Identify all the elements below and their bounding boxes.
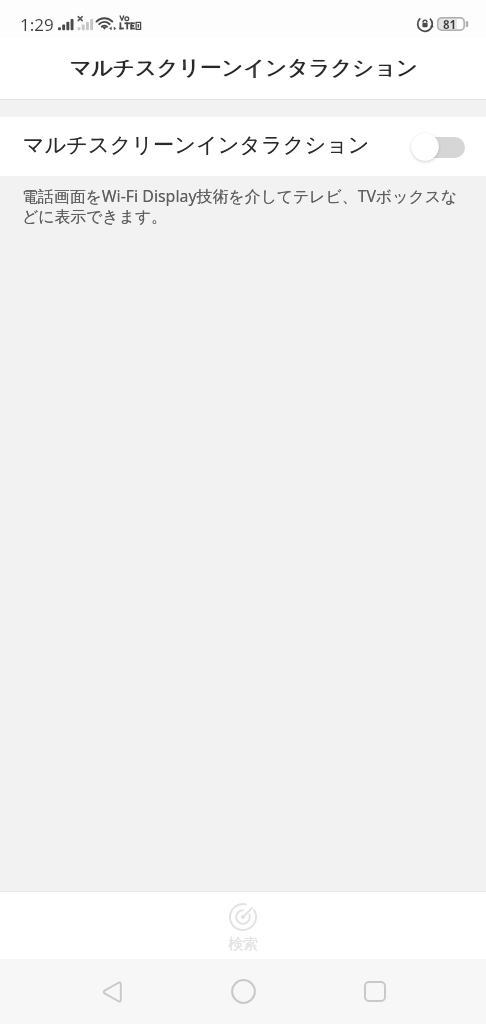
staticText: マルチスクリーンインタラクション [69, 54, 418, 81]
staticText: 81 [443, 17, 457, 31]
staticText: マルチスクリーンインタラクション [23, 132, 370, 159]
button[interactable]: Recents [329, 959, 421, 1024]
button[interactable]: Back [65, 959, 157, 1024]
staticText: 電話画面をWi-Fi Display技術を介してテレビ、TVボックスなどに表示で… [22, 185, 471, 227]
button[interactable]: Toggle multi-screen interaction [410, 132, 465, 162]
staticText: 検索 [228, 935, 258, 954]
button[interactable]: Home [197, 959, 289, 1024]
staticText: 1:29 [20, 13, 54, 36]
staticText: マルチスクリーンインタラクション [70, 54, 419, 81]
staticText: 電話画面をWi-Fi Display技術を介してテレビ、TVボックスなどに表示で… [22, 185, 471, 227]
staticText: マルチスクリーンインタラクション [23, 132, 370, 159]
button[interactable]: マルチスクリーンインタラクション [0, 117, 486, 176]
